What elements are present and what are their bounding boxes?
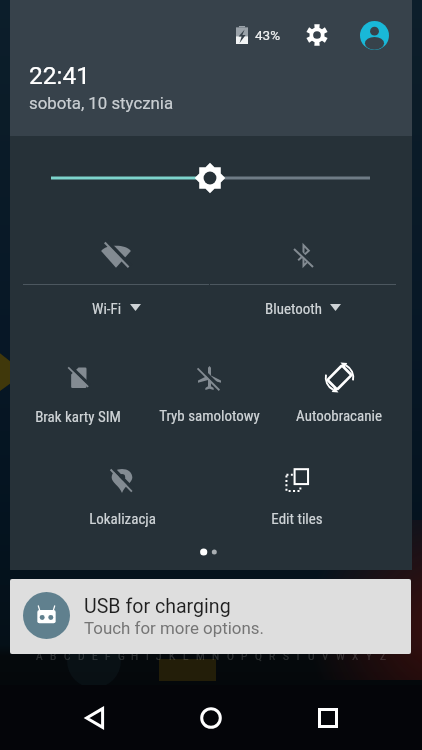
- staticText: Wi-Fi: [92, 300, 122, 318]
- staticText: T: [295, 651, 301, 663]
- staticText: Lokalizacja: [89, 510, 156, 528]
- staticText: N: [212, 651, 220, 663]
- staticText: USB for charging: [84, 595, 231, 618]
- staticText: 43%: [255, 27, 281, 43]
- staticText: G: [118, 651, 125, 663]
- staticText: E: [92, 651, 98, 663]
- staticText: S: [283, 651, 289, 663]
- button[interactable]: USB for charging: [10, 579, 411, 654]
- button[interactable]: Tryb samolotowy: [143, 352, 275, 431]
- button[interactable]: Edit tiles: [231, 454, 363, 534]
- staticText: Autoobracanie: [296, 407, 382, 425]
- button[interactable]: User profile: [357, 18, 391, 52]
- button[interactable]: Bluetooth: [210, 230, 396, 325]
- staticText: X: [352, 651, 359, 663]
- staticText: B: [50, 651, 57, 663]
- button[interactable]: Lokalizacja: [56, 455, 188, 534]
- button[interactable]: Wi-Fi: [23, 230, 209, 325]
- staticText: K: [169, 651, 176, 663]
- staticText: 22:41: [29, 61, 91, 90]
- staticText: Q: [255, 651, 262, 663]
- staticText: I: [146, 651, 149, 663]
- staticText: sobota, 10 stycznia: [29, 93, 174, 113]
- staticText: A: [36, 651, 43, 663]
- staticText: U: [308, 651, 315, 663]
- staticText: D: [78, 651, 85, 663]
- staticText: M: [196, 651, 205, 663]
- button[interactable]: Recent apps: [294, 685, 362, 750]
- staticText: W: [336, 651, 345, 663]
- staticText: F: [105, 651, 111, 663]
- staticText: Bluetooth: [265, 300, 322, 318]
- button[interactable]: Settings: [300, 18, 334, 52]
- staticText: Edit tiles: [271, 510, 323, 528]
- staticText: Brak karty SIM: [35, 408, 121, 426]
- staticText: P: [241, 651, 248, 663]
- staticText: C: [64, 651, 71, 663]
- button[interactable]: Autoobracanie: [273, 351, 405, 431]
- staticText: Tryb samolotowy: [159, 407, 260, 425]
- staticText: V: [322, 651, 329, 663]
- button[interactable]: Brak karty SIM: [12, 352, 144, 432]
- staticText: J: [156, 651, 162, 663]
- button[interactable]: Back: [60, 685, 128, 750]
- staticText: Y: [366, 651, 373, 663]
- staticText: R: [269, 651, 276, 663]
- button[interactable]: Home: [177, 685, 245, 750]
- staticText: L: [183, 651, 189, 663]
- staticText: O: [227, 651, 234, 663]
- staticText: Touch for more options.: [84, 618, 264, 638]
- staticText: H: [131, 651, 139, 663]
- staticText: Z: [380, 651, 386, 663]
